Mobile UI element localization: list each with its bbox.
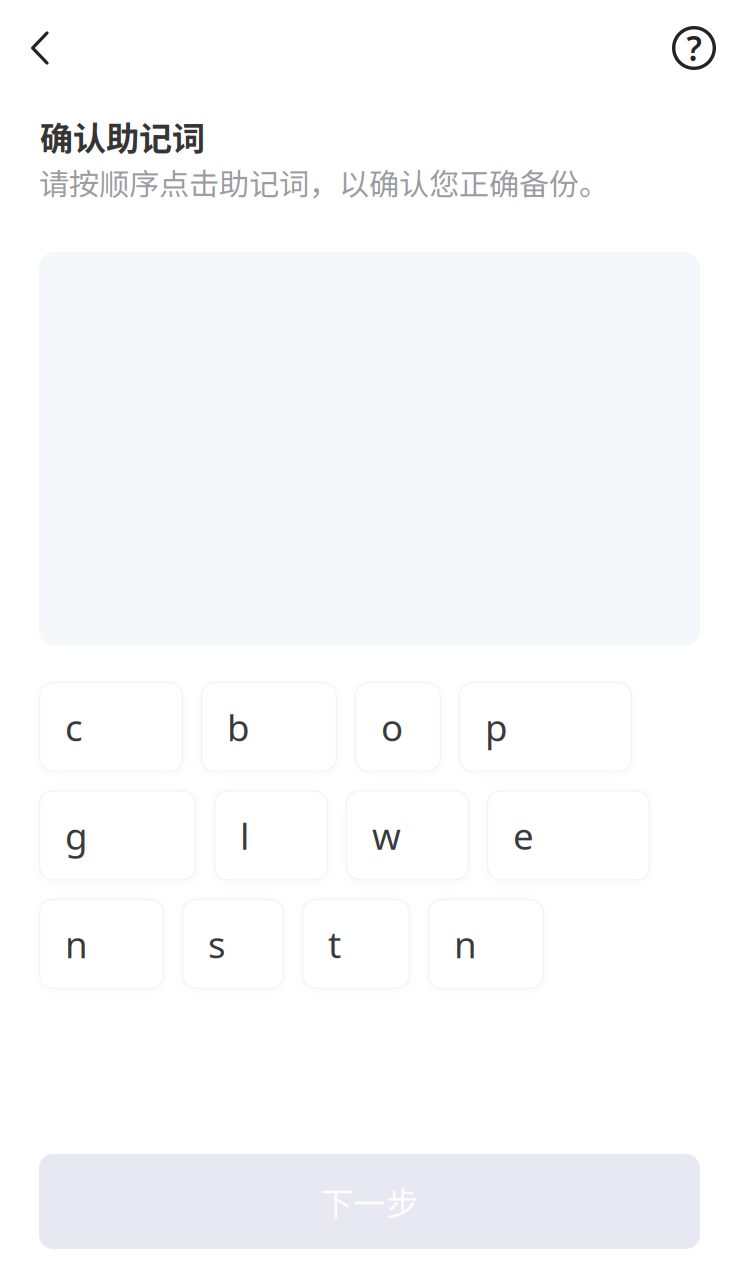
button[interactable]: Back [0, 19, 66, 77]
staticText: s [208, 919, 226, 969]
staticText: w [372, 810, 401, 860]
button[interactable]: g [39, 790, 196, 880]
button[interactable]: c [39, 682, 183, 772]
staticText: 确认助记词 [40, 112, 205, 160]
staticText: g [65, 810, 88, 860]
button[interactable]: s [182, 899, 284, 989]
staticText: c [65, 702, 83, 752]
staticText: 请按顺序点击助记词，以确认您正确备份。 [39, 160, 609, 204]
staticText: n [454, 919, 477, 969]
button[interactable]: o [355, 682, 441, 772]
button[interactable]: w [346, 790, 469, 880]
button[interactable]: n [428, 899, 544, 989]
staticText: ? [686, 25, 701, 71]
button[interactable]: t [302, 899, 410, 989]
button[interactable]: Help [656, 16, 738, 80]
staticText: e [513, 810, 534, 860]
staticText: o [381, 702, 403, 752]
button[interactable]: l [214, 790, 328, 880]
staticText: l [240, 810, 249, 860]
staticText: t [328, 919, 341, 969]
staticText: n [65, 919, 88, 969]
button[interactable]: b [201, 682, 337, 772]
staticText: 下一步 [320, 1178, 419, 1225]
staticText: p [485, 702, 508, 752]
button[interactable]: n [39, 899, 164, 989]
button[interactable]: e [487, 790, 650, 880]
button[interactable]: p [459, 682, 632, 772]
staticText: b [227, 702, 250, 752]
